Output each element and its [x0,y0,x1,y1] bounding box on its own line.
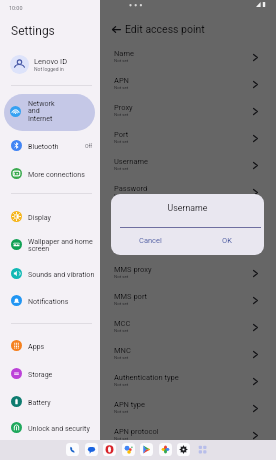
staticText: Sounds and vibration [28,270,100,278]
button[interactable]: Unlock and security [0,415,100,440]
staticText: Not logged in [34,66,64,72]
staticText: Not set [114,85,129,90]
staticText: Display [28,213,100,221]
button[interactable]: Apps [0,333,100,358]
button[interactable]: Notifications [0,288,100,313]
staticText: More connections [28,170,100,178]
button[interactable]: Storage [0,361,100,386]
button[interactable]: Lenovo ID [0,50,100,78]
button[interactable]: MMS port [100,287,276,314]
button[interactable]: Network and Internet [4,94,95,131]
staticText: 10:00 [9,5,23,11]
staticText: MMS port [114,292,148,301]
staticText: Not set [114,58,129,63]
button[interactable]: Settings [177,443,190,456]
staticText: Not set [114,328,129,333]
button[interactable]: Name [100,44,276,71]
button[interactable]: Password [100,179,276,206]
button[interactable]: APN type [100,395,276,422]
button[interactable]: All apps [196,443,209,456]
staticText: Off [85,143,93,149]
button[interactable]: Port [100,125,276,152]
button[interactable]: Wallpaper and home screen [0,232,100,257]
staticText: Not set [114,112,129,117]
button[interactable]: Phone [66,443,79,456]
button[interactable]: Server [100,206,276,233]
button[interactable]: Battery [0,389,100,414]
button[interactable]: Proxy [100,98,276,125]
staticText: Name [114,49,134,58]
button[interactable]: MNC [100,341,276,368]
staticText: APN [114,76,129,85]
button[interactable]: More connections [0,161,100,186]
button[interactable]: APN protocol [100,422,276,449]
staticText: Wallpaper and home screen [28,237,100,253]
staticText: Bluetooth [28,142,85,150]
button[interactable]: APN [100,71,276,98]
staticText: Not set [114,139,129,144]
staticText: Not set [114,301,129,306]
button[interactable]: Back [109,22,123,36]
button[interactable]: Photos [159,443,172,456]
staticText: Apps [28,342,100,350]
button[interactable]: MMS proxy [100,260,276,287]
staticText: Not set [114,355,129,360]
staticText: Edit access point [125,23,276,35]
staticText: Authentication type [114,373,179,382]
staticText: Battery [28,398,100,406]
button[interactable]: Assistant [122,443,135,456]
button[interactable]: Authentication type [100,368,276,395]
button[interactable]: Username [100,152,276,179]
button[interactable]: Messages [85,443,98,456]
button[interactable]: Display [0,204,100,229]
staticText: Storage [28,370,100,378]
button[interactable]: Play Store [140,443,153,456]
staticText: Not set [114,274,129,279]
button[interactable]: Bluetooth [0,133,100,158]
staticText: Not set [114,193,129,198]
staticText: MNC [114,346,131,355]
staticText: APN type [114,400,146,409]
staticText: MCC [114,319,131,328]
staticText: Password [114,184,148,193]
staticText: Settings [11,24,55,38]
staticText: Not set [114,382,129,387]
button[interactable]: Cancel [139,236,162,245]
staticText: Username [111,203,264,213]
staticText: MMS proxy [114,265,152,274]
staticText: Not set [114,436,129,441]
button[interactable]: OK [222,236,232,245]
staticText: Port [114,130,129,139]
button[interactable]: Sounds and vibration [0,261,100,286]
staticText: Lenovo ID [34,57,68,66]
staticText: Unlock and security [28,424,100,432]
button[interactable]: MMSC [100,233,276,260]
staticText: Notifications [28,297,100,305]
staticText: Not set [114,409,129,414]
staticText: APN protocol [114,427,159,436]
staticText: Username [114,157,149,166]
button[interactable]: Opera [103,443,116,456]
staticText: Proxy [114,103,133,112]
staticText: Network and Internet [28,99,55,123]
button[interactable]: MCC [100,314,276,341]
staticText: Not set [114,166,129,171]
